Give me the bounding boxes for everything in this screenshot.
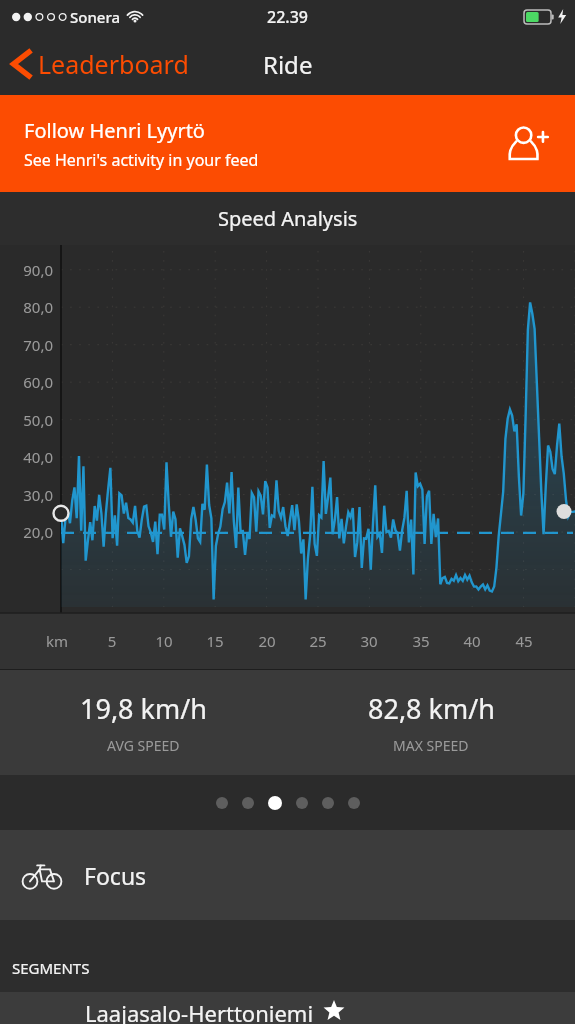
staticText: AVG SPEED — [107, 736, 180, 755]
button[interactable]: 19,8 km/h — [0, 670, 287, 775]
staticText: km — [46, 631, 69, 651]
staticText: Speed Analysis — [218, 205, 358, 232]
button[interactable]: Focus — [0, 830, 575, 920]
staticText: 30,0 — [8, 485, 53, 505]
staticText: 35 — [401, 631, 441, 651]
button[interactable]: Follow Henri Lyyrtö — [0, 95, 575, 192]
staticText: 15 — [195, 631, 235, 651]
other: Follow athlete — [501, 117, 555, 171]
staticText: Focus — [84, 860, 147, 891]
staticText: 20,0 — [8, 522, 53, 542]
staticText: 45 — [504, 631, 544, 651]
staticText: 25 — [298, 631, 338, 651]
staticText: 10 — [144, 631, 184, 651]
staticText: 40 — [452, 631, 492, 651]
staticText: SEGMENTS — [12, 958, 90, 978]
staticText: 60,0 — [8, 372, 53, 392]
staticText: 50,0 — [8, 410, 53, 430]
staticText: 90,0 — [8, 260, 53, 280]
staticText: Sonera — [70, 7, 121, 27]
staticText: Follow Henri Lyyrtö — [24, 117, 205, 144]
staticText: 22.39 — [267, 6, 308, 28]
staticText: MAX SPEED — [393, 736, 469, 755]
staticText: Ride — [263, 48, 313, 81]
button[interactable]: Leaderboard — [0, 41, 199, 87]
staticText: Laajasalo-Herttoniemi — [85, 998, 314, 1024]
staticText: 5 — [92, 631, 132, 651]
staticText: 40,0 — [8, 447, 53, 467]
staticText: 80,0 — [8, 297, 53, 317]
button[interactable]: 82,8 km/h — [287, 670, 575, 775]
staticText: 19,8 km/h — [80, 690, 207, 727]
staticText: 70,0 — [8, 335, 53, 355]
staticText: 82,8 km/h — [368, 690, 495, 727]
staticText: See Henri's activity in your feed — [24, 149, 259, 171]
staticText: Leaderboard — [38, 47, 189, 81]
staticText: 30 — [349, 631, 389, 651]
staticText: 20 — [247, 631, 287, 651]
button[interactable]: Laajasalo-Herttoniemi — [0, 992, 575, 1024]
